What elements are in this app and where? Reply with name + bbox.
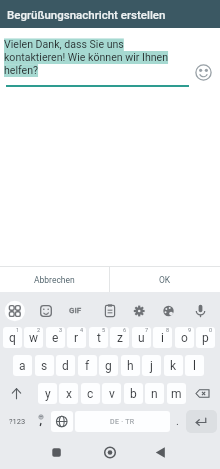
- button[interactable]: t: [89, 327, 108, 348]
- staticText: x: [66, 387, 72, 401]
- staticText: GIF: [69, 306, 82, 315]
- staticText: w: [29, 331, 39, 345]
- staticText: Abbrechen: [34, 275, 75, 285]
- staticText: 9: [188, 327, 192, 333]
- button[interactable]: [127, 292, 158, 326]
- staticText: f: [85, 359, 90, 373]
- button[interactable]: [195, 64, 212, 81]
- staticText: d: [62, 359, 69, 373]
- staticText: i: [161, 331, 164, 345]
- staticText: s: [41, 359, 48, 373]
- button[interactable]: [51, 411, 73, 432]
- staticText: 1: [16, 327, 20, 333]
- button[interactable]: [189, 292, 220, 326]
- staticText: 6: [123, 327, 127, 333]
- button[interactable]: g: [99, 355, 118, 376]
- staticText: g: [105, 359, 112, 373]
- button[interactable]: o: [175, 327, 194, 348]
- button[interactable]: ?123: [2, 411, 33, 432]
- button[interactable]: u: [132, 327, 151, 348]
- staticText: 4: [80, 327, 84, 333]
- staticText: e: [52, 331, 59, 345]
- staticText: .: [176, 415, 179, 428]
- staticText: n: [151, 387, 158, 401]
- staticText: z: [117, 331, 123, 345]
- staticText: OK: [159, 275, 171, 285]
- button[interactable]: y: [38, 383, 57, 404]
- button[interactable]: [186, 410, 217, 433]
- button[interactable]: [64, 292, 96, 326]
- button[interactable]: n: [145, 383, 164, 404]
- button[interactable]: i: [153, 327, 172, 348]
- button[interactable]: [74, 440, 147, 469]
- button[interactable]: x: [59, 383, 78, 404]
- button[interactable]: [0, 440, 74, 469]
- staticText: m: [171, 387, 182, 401]
- button[interactable]: p: [196, 327, 215, 348]
- staticText: 7: [145, 327, 149, 333]
- staticText: Begrüßungsnachricht erstellen: [7, 8, 166, 21]
- button[interactable]: Abbrechen: [0, 267, 109, 292]
- button[interactable]: q: [3, 327, 22, 348]
- staticText: l: [193, 359, 196, 373]
- button[interactable]: [158, 292, 189, 326]
- button[interactable]: b: [124, 383, 143, 404]
- staticText: 0: [209, 327, 213, 333]
- staticText: Vielen Dank, dass Sie uns kontaktieren! …: [4, 38, 169, 77]
- button[interactable]: d: [56, 355, 75, 376]
- button[interactable]: k: [164, 355, 183, 376]
- button[interactable]: v: [102, 383, 121, 404]
- staticText: 3: [59, 327, 63, 333]
- button[interactable]: [96, 292, 127, 326]
- button[interactable]: c: [81, 383, 100, 404]
- staticText: DE · TR: [110, 418, 135, 426]
- staticText: h: [127, 359, 134, 373]
- staticText: j: [150, 359, 153, 373]
- button[interactable]: a: [13, 355, 32, 376]
- staticText: ?123: [9, 417, 26, 426]
- staticText: k: [170, 359, 177, 373]
- button[interactable]: l: [185, 355, 204, 376]
- staticText: t: [97, 331, 101, 345]
- button[interactable]: Begrüßungsnachricht erstellen: [0, 0, 220, 28]
- button[interactable]: h: [121, 355, 140, 376]
- button[interactable]: z: [110, 327, 129, 348]
- button[interactable]: DE · TR: [75, 411, 170, 432]
- button[interactable]: [32, 292, 64, 326]
- staticText: r: [74, 331, 79, 345]
- button[interactable]: [147, 440, 220, 469]
- button[interactable]: e: [46, 327, 65, 348]
- button[interactable]: f: [78, 355, 97, 376]
- staticText: 5: [102, 327, 106, 333]
- staticText: 2: [37, 327, 41, 333]
- button[interactable]: s: [35, 355, 54, 376]
- button[interactable]: w: [24, 327, 43, 348]
- staticText: v: [109, 387, 115, 401]
- button[interactable]: .: [171, 411, 184, 432]
- staticText: p: [202, 331, 209, 345]
- button[interactable]: [2, 383, 31, 404]
- staticText: a: [19, 359, 26, 373]
- button[interactable]: OK: [110, 267, 220, 292]
- button[interactable]: [188, 383, 217, 404]
- staticText: u: [138, 331, 145, 345]
- staticText: y: [45, 387, 51, 401]
- button[interactable]: r: [67, 327, 86, 348]
- staticText: b: [130, 387, 137, 401]
- button[interactable]: [0, 292, 32, 326]
- staticText: 8: [166, 327, 170, 333]
- staticText: o: [181, 331, 188, 345]
- button[interactable]: j: [142, 355, 161, 376]
- staticText: q: [9, 331, 16, 345]
- staticText: c: [87, 387, 94, 401]
- button[interactable]: [34, 411, 48, 432]
- button[interactable]: m: [167, 383, 186, 404]
